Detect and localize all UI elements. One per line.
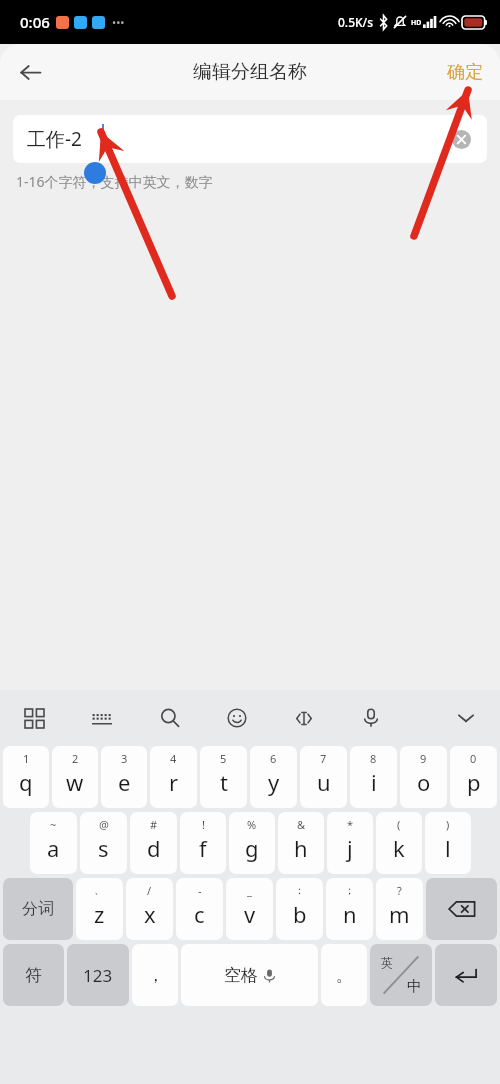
button[interactable]: (: [376, 812, 422, 874]
button[interactable]: %: [229, 812, 275, 874]
button[interactable]: 6: [250, 746, 297, 808]
staticText: 0: [470, 751, 477, 766]
button[interactable]: 5: [200, 746, 247, 808]
staticText: •••: [112, 15, 125, 30]
staticText: 3: [121, 751, 128, 766]
button[interactable]: 确定: [436, 52, 494, 93]
button[interactable]: @: [80, 812, 127, 874]
staticText: e: [118, 767, 131, 797]
staticText: 空格: [224, 965, 258, 986]
staticText: g: [245, 833, 259, 863]
staticText: HD: [411, 18, 422, 28]
button[interactable]: 符: [3, 944, 64, 1006]
button[interactable]: 8: [350, 746, 397, 808]
staticText: b: [293, 899, 307, 929]
staticText: !: [202, 817, 205, 832]
staticText: f: [199, 833, 207, 863]
staticText: c: [194, 899, 205, 929]
button[interactable]: Voice input: [353, 700, 389, 736]
staticText: s: [98, 833, 109, 863]
staticText: x: [144, 899, 156, 929]
button[interactable]: 1: [3, 746, 49, 808]
staticText: ：: [294, 883, 305, 897]
staticText: ~: [50, 817, 57, 832]
staticText: ；: [344, 883, 355, 897]
staticText: y: [268, 767, 280, 797]
button[interactable]: *: [327, 812, 373, 874]
button[interactable]: ，: [132, 944, 178, 1006]
button[interactable]: ；: [326, 878, 373, 940]
button[interactable]: &: [278, 812, 324, 874]
staticText: r: [169, 767, 179, 797]
button[interactable]: Back: [6, 48, 54, 96]
staticText: j: [347, 833, 353, 863]
button[interactable]: Search: [152, 700, 188, 736]
staticText: p: [467, 767, 481, 797]
staticText: -: [198, 883, 202, 898]
button[interactable]: Keyboard layouts: [16, 700, 52, 736]
staticText: &: [297, 817, 306, 832]
staticText: 9: [420, 751, 427, 766]
button[interactable]: 工作-2: [13, 115, 487, 163]
staticText: z: [94, 899, 105, 929]
staticText: 确定: [447, 61, 483, 84]
staticText: a: [47, 833, 60, 863]
button[interactable]: 、: [76, 878, 123, 940]
button[interactable]: _: [226, 878, 273, 940]
button[interactable]: #: [130, 812, 177, 874]
staticText: 中: [407, 977, 422, 996]
button[interactable]: Backspace: [426, 878, 497, 940]
staticText: 1-16个字符，支持中英文，数字: [16, 172, 213, 191]
button[interactable]: Clear text: [446, 124, 476, 154]
staticText: 0.5K/s: [338, 14, 374, 30]
staticText: q: [19, 767, 33, 797]
button[interactable]: ：: [276, 878, 323, 940]
staticText: i: [371, 767, 377, 797]
button[interactable]: Move cursor: [286, 700, 322, 736]
staticText: v: [244, 899, 256, 929]
staticText: h: [294, 833, 308, 863]
button[interactable]: -: [176, 878, 223, 940]
staticText: 6: [270, 751, 277, 766]
button[interactable]: ): [425, 812, 471, 874]
button[interactable]: 空格: [181, 944, 318, 1006]
staticText: /: [147, 883, 152, 898]
button[interactable]: /: [126, 878, 173, 940]
staticText: %: [247, 817, 257, 832]
staticText: 2: [72, 751, 79, 766]
staticText: 7: [320, 751, 327, 766]
staticText: u: [317, 767, 331, 797]
button[interactable]: ?: [376, 878, 423, 940]
button[interactable]: Keyboard: [84, 700, 120, 736]
button[interactable]: 9: [400, 746, 447, 808]
button[interactable]: 0: [450, 746, 497, 808]
staticText: 123: [83, 964, 113, 987]
staticText: #: [150, 817, 158, 832]
button[interactable]: ~: [30, 812, 77, 874]
staticText: o: [417, 767, 431, 797]
button[interactable]: !: [180, 812, 226, 874]
staticText: 、: [94, 883, 105, 897]
staticText: w: [66, 767, 84, 797]
button[interactable]: 3: [101, 746, 147, 808]
staticText: 8: [370, 751, 377, 766]
button[interactable]: 分词: [3, 878, 73, 940]
staticText: t: [220, 767, 228, 797]
staticText: m: [389, 899, 410, 929]
button[interactable]: 4: [150, 746, 197, 808]
button[interactable]: Emoji: [219, 700, 255, 736]
button[interactable]: 123: [67, 944, 129, 1006]
staticText: k: [393, 833, 405, 863]
button[interactable]: Switch Chinese English input: [370, 944, 432, 1006]
button[interactable]: 。: [321, 944, 367, 1006]
staticText: 符: [25, 965, 42, 986]
button[interactable]: 2: [52, 746, 98, 808]
staticText: ，: [147, 965, 164, 986]
staticText: 4: [170, 751, 177, 766]
button[interactable]: 7: [300, 746, 347, 808]
button[interactable]: Enter: [435, 944, 497, 1006]
staticText: 1: [23, 751, 30, 766]
staticText: (: [397, 817, 401, 832]
button[interactable]: Hide keyboard: [448, 700, 484, 736]
staticText: 。: [336, 965, 353, 986]
